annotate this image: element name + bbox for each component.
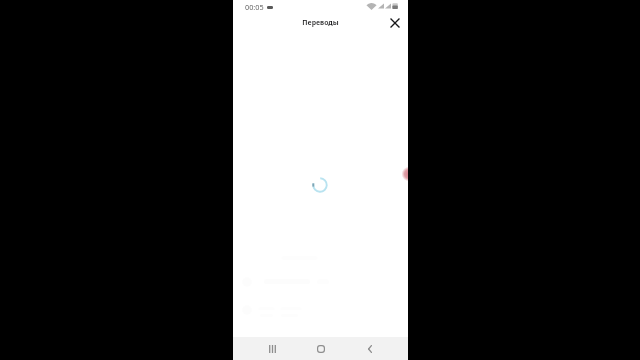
staticText: 00:05	[245, 2, 264, 12]
button[interactable]: Recents	[260, 341, 284, 357]
button[interactable]: Close	[387, 15, 403, 31]
button[interactable]: Home	[309, 341, 333, 357]
staticText: Переводы	[302, 18, 339, 27]
button[interactable]: Back	[358, 341, 382, 357]
